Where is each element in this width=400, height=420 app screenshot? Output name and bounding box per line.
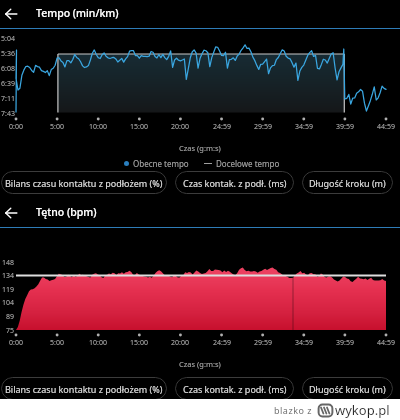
button[interactable]: Back (0, 199, 21, 227)
button[interactable]: Bilans czasu kontaktu z podłożem (%) (1, 377, 167, 400)
staticText: Docelowe tempo (216, 158, 280, 169)
staticText: 7:43 (1, 109, 15, 119)
staticText: Długość kroku (m) (309, 383, 386, 395)
button[interactable]: Bilans czasu kontaktu z podłożem (%) (1, 171, 167, 194)
staticText: 10:00 (89, 122, 107, 132)
staticText: 44:59 (377, 338, 395, 348)
staticText: 39:59 (336, 122, 354, 132)
staticText: 119 (2, 285, 15, 295)
staticText: 134 (2, 271, 15, 281)
staticText: wykop.pl (335, 401, 390, 419)
staticText: 104 (2, 298, 15, 308)
staticText: blazko z (274, 404, 312, 416)
staticText: Bilans czasu kontaktu z podłożem (%) (5, 177, 163, 189)
staticText: 20:00 (171, 122, 189, 132)
staticText: 34:59 (295, 122, 313, 132)
staticText: 89 (6, 312, 15, 322)
staticText: 0:00 (9, 338, 23, 348)
staticText: Obecne tempo (133, 158, 189, 169)
staticText: Tętno (bpm) (36, 205, 97, 219)
staticText: 5:36 (1, 49, 15, 59)
staticText: 6:39 (1, 79, 15, 89)
staticText: 148 (2, 258, 15, 268)
button[interactable]: Czas kontak. z podł. (ms) (175, 171, 294, 194)
staticText: 0:00 (9, 122, 23, 132)
staticText: Tempo (min/km) (36, 6, 119, 20)
staticText: 5:00 (50, 338, 64, 348)
staticText: 39:59 (336, 338, 354, 348)
button[interactable]: Długość kroku (m) (302, 377, 393, 400)
staticText: 15:00 (130, 338, 148, 348)
staticText: Czas kontak. z podł. (ms) (183, 177, 287, 189)
staticText: 5:00 (50, 122, 64, 132)
staticText: 10:00 (89, 338, 107, 348)
staticText: 29:59 (254, 122, 272, 132)
staticText: 7:11 (1, 94, 15, 104)
staticText: Czas (g:m:s) (179, 359, 221, 369)
button[interactable]: Czas kontak. z podł. (ms) (175, 377, 294, 400)
staticText: Czas kontak. z podł. (ms) (183, 383, 287, 395)
staticText: Czas (g:m:s) (179, 143, 221, 153)
button[interactable]: Back (0, 0, 21, 28)
staticText: Długość kroku (m) (309, 177, 386, 189)
staticText: 44:59 (377, 122, 395, 132)
staticText: Bilans czasu kontaktu z podłożem (%) (5, 383, 163, 395)
staticText: 5:04 (1, 34, 15, 44)
staticText: 15:00 (130, 122, 148, 132)
staticText: 24:59 (213, 122, 231, 132)
staticText: 20:00 (171, 338, 189, 348)
staticText: 34:59 (295, 338, 313, 348)
staticText: 6:08 (1, 64, 15, 74)
staticText: 75 (6, 326, 15, 336)
button[interactable]: Długość kroku (m) (302, 171, 393, 194)
staticText: 29:59 (254, 338, 272, 348)
staticText: 24:59 (213, 338, 231, 348)
